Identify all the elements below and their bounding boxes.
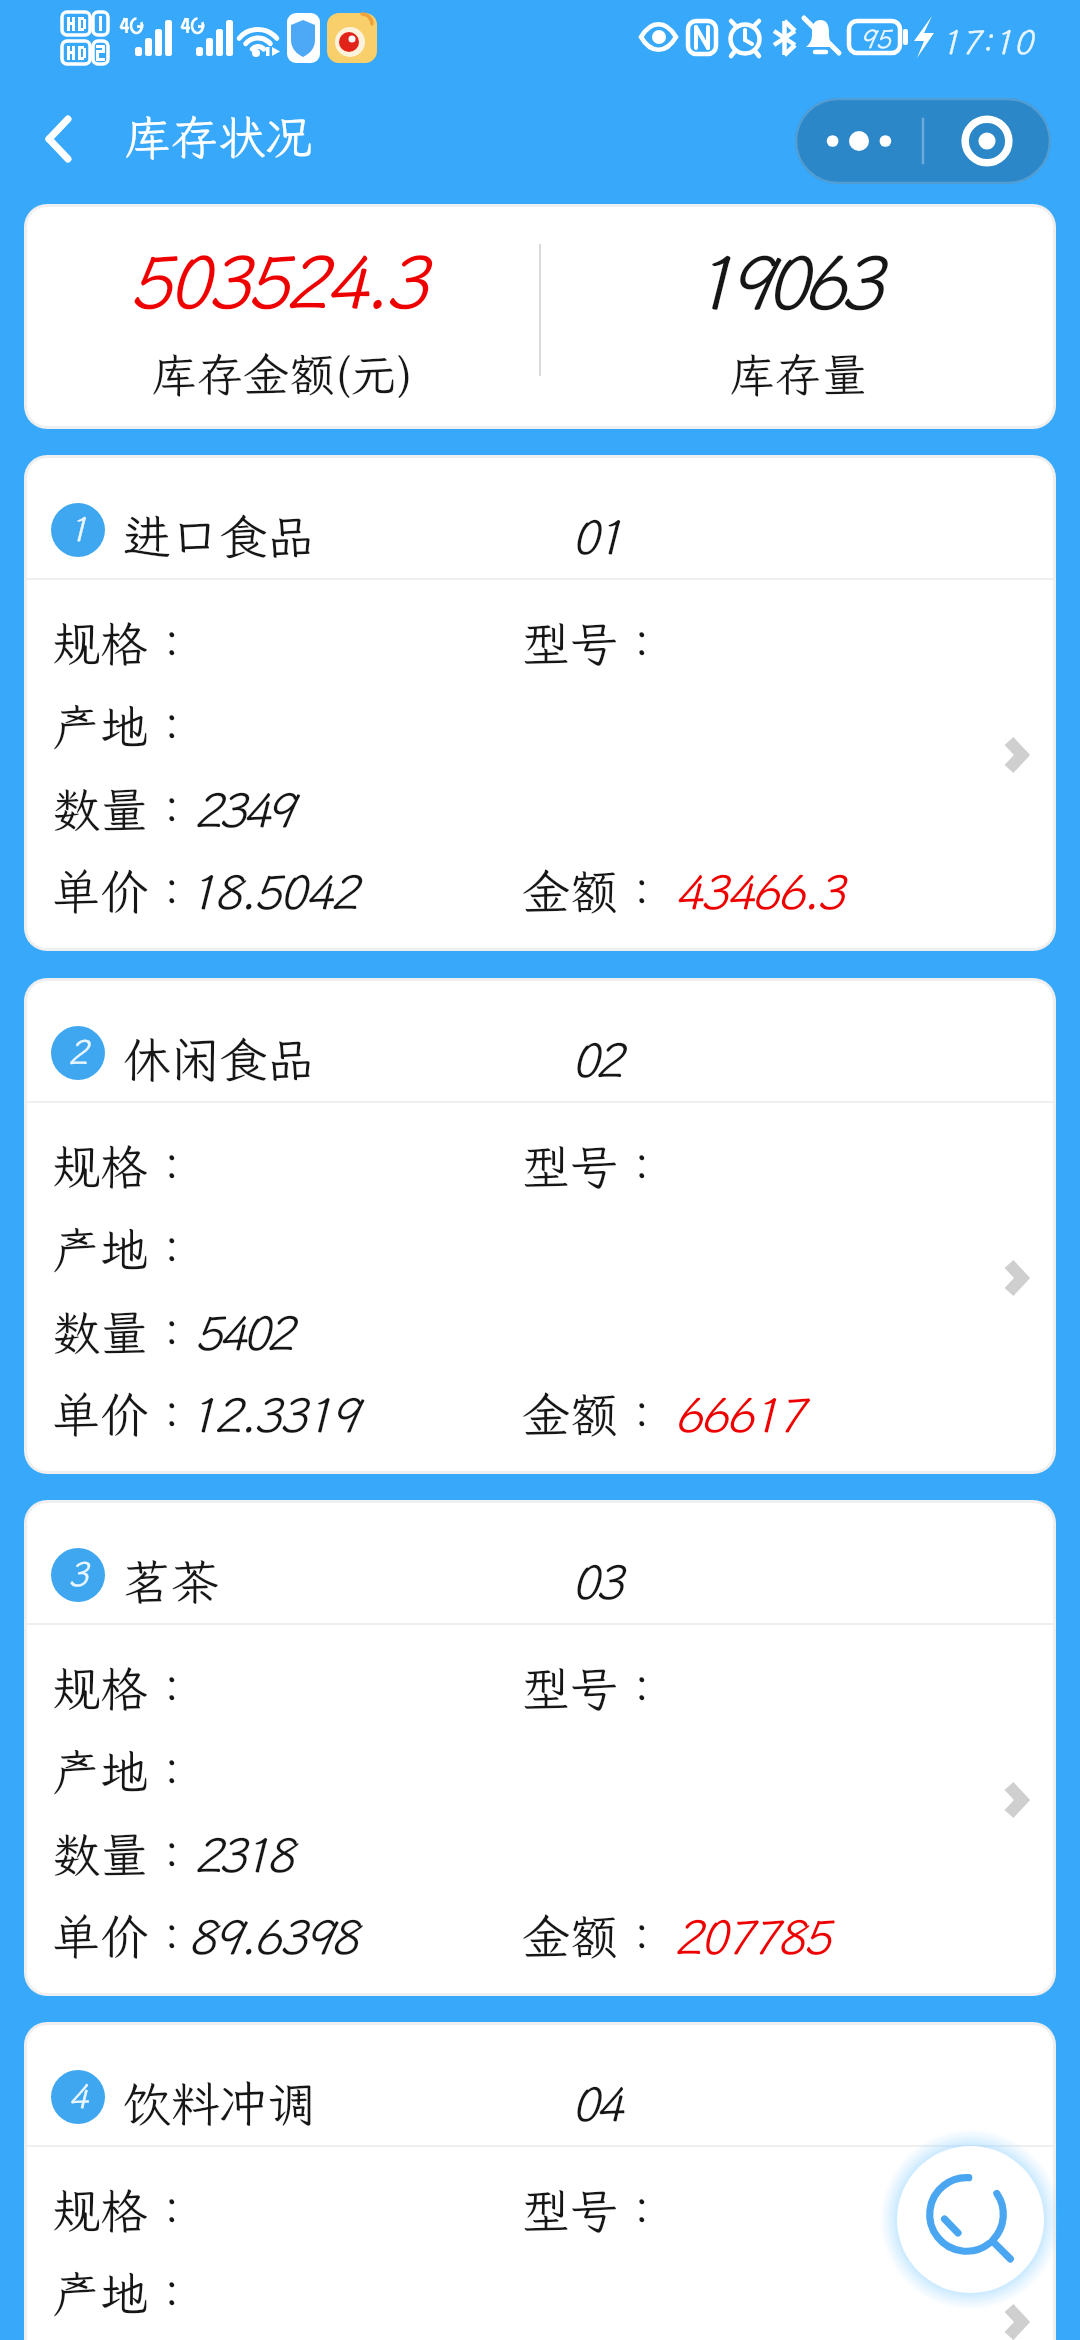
staticText: 单价： — [52, 1904, 197, 1967]
staticText: 规格： — [52, 611, 197, 674]
staticText: 2318 — [194, 1822, 291, 1885]
staticText: 66617 — [674, 1382, 803, 1445]
staticText: 规格： — [52, 1134, 197, 1197]
staticText: 休闲食品 — [123, 1027, 316, 1090]
staticText: 12.3319 — [188, 1382, 356, 1445]
staticText: 19063 — [691, 232, 877, 331]
staticText: 1 — [68, 506, 89, 551]
staticText: 库存量 — [729, 344, 867, 405]
staticText: 数量： — [52, 1822, 197, 1885]
staticText: 型号： — [522, 1656, 667, 1719]
staticText: 4 — [68, 2073, 89, 2118]
button[interactable]: Search — [897, 2146, 1044, 2293]
button[interactable]: 1 — [27, 458, 1053, 948]
staticText: 01 — [571, 504, 620, 567]
button[interactable]: Close mini program — [923, 98, 1051, 184]
staticText: 数量： — [52, 777, 197, 840]
staticText: 95 — [860, 21, 892, 55]
staticText: 产地： — [52, 694, 197, 757]
staticText: 进口食品 — [123, 504, 316, 567]
staticText: 207785 — [674, 1904, 829, 1967]
staticText: 2349 — [194, 777, 291, 840]
staticText: 503524.3 — [128, 232, 424, 329]
staticText: 规格： — [52, 2178, 197, 2241]
button[interactable]: Back — [19, 99, 99, 179]
button[interactable]: More options — [795, 98, 923, 184]
staticText: 产地： — [52, 2261, 197, 2324]
staticText: 型号： — [522, 2178, 667, 2241]
staticText: 型号： — [522, 1134, 667, 1197]
button[interactable]: 3 — [27, 1503, 1053, 1993]
staticText: 库存状况 — [124, 105, 312, 167]
staticText: 单价： — [52, 1382, 197, 1445]
staticText: 金额： — [522, 1382, 667, 1445]
staticText: 金额： — [522, 1904, 667, 1967]
staticText: 2 — [68, 1029, 89, 1074]
staticText: 型号： — [522, 611, 667, 674]
button[interactable]: 2 — [27, 981, 1053, 1471]
staticText: 3 — [68, 1551, 89, 1596]
staticText: 5402 — [194, 1300, 291, 1363]
staticText: 饮料冲调 — [123, 2071, 316, 2134]
button[interactable]: 503524.3 — [27, 207, 1053, 426]
staticText: 产地： — [52, 1217, 197, 1280]
staticText: 04 — [571, 2071, 620, 2134]
staticText: 产地： — [52, 1739, 197, 1802]
staticText: 茗茶 — [123, 1549, 220, 1612]
staticText: 规格： — [52, 1656, 197, 1719]
staticText: 03 — [571, 1549, 620, 1612]
staticText: 02 — [571, 1027, 620, 1090]
staticText: 库存金额(元) — [151, 344, 414, 405]
staticText: 43466.3 — [674, 859, 842, 922]
staticText: 17:10 — [940, 19, 1034, 64]
staticText: 金额： — [522, 859, 667, 922]
button[interactable]: 4 — [27, 2025, 1053, 2340]
staticText: 数量： — [52, 1300, 197, 1363]
staticText: 89.6398 — [188, 1904, 356, 1967]
staticText: 单价： — [52, 859, 197, 922]
staticText: 18.5042 — [188, 859, 356, 922]
